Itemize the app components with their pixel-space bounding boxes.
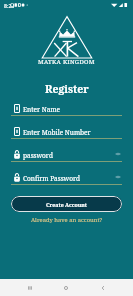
button[interactable]: Home — [54, 279, 78, 296]
button[interactable]: Already have an account? — [27, 215, 107, 225]
staticText: Confirm Password — [23, 174, 80, 183]
staticText: MATKA KINGDOM — [38, 58, 95, 66]
staticText: Create Account — [46, 201, 88, 208]
staticText: Enter Name — [23, 105, 60, 114]
other: Toggle password visibility — [115, 175, 121, 179]
staticText: password — [23, 151, 53, 160]
button[interactable]: Back — [91, 279, 115, 296]
button[interactable]: Enter Name — [11, 102, 122, 116]
button[interactable]: password — [11, 148, 122, 162]
staticText: Register — [45, 82, 89, 96]
staticText: 8:28 — [4, 2, 15, 9]
staticText: Already have an account? — [31, 216, 103, 224]
staticText: Enter Mobile Number — [23, 128, 91, 137]
button[interactable]: Confirm Password — [11, 171, 122, 185]
button[interactable]: Enter Mobile Number — [11, 125, 122, 139]
button[interactable]: Recent apps — [18, 279, 42, 296]
button[interactable]: Create Account — [11, 196, 122, 212]
other: Toggle password visibility — [115, 152, 121, 156]
